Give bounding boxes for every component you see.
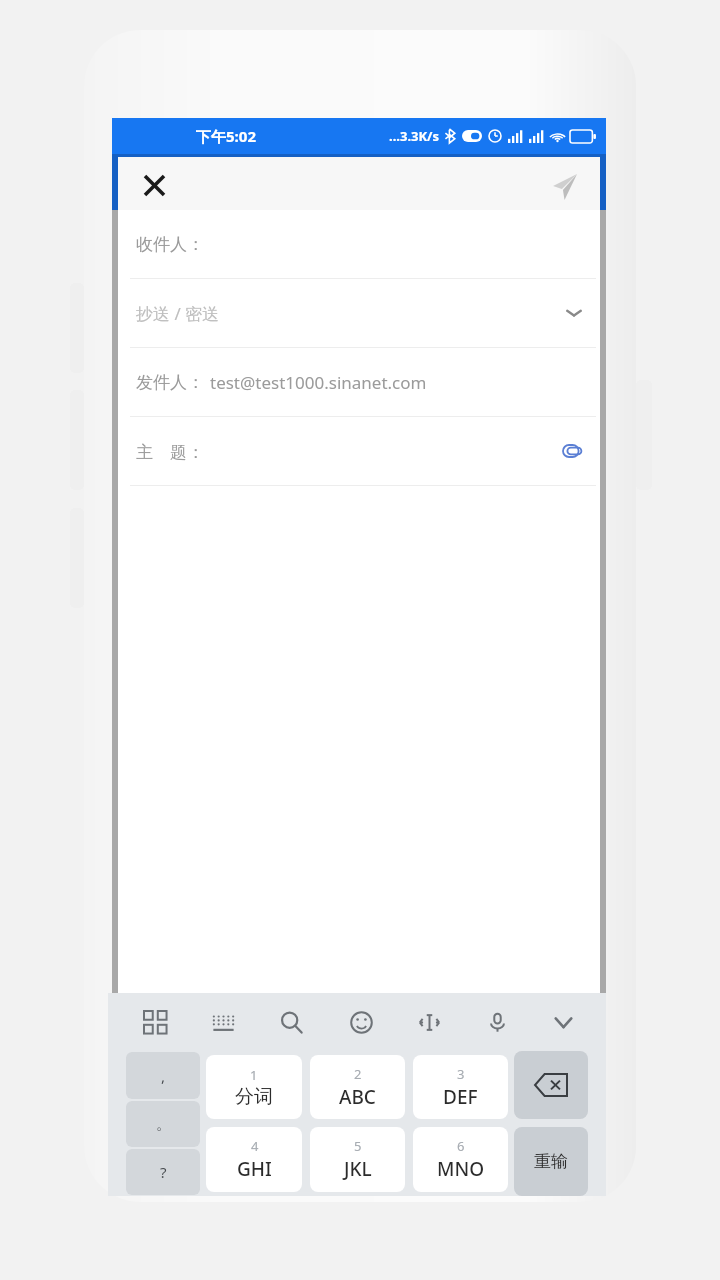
staticText: , bbox=[161, 1066, 166, 1086]
staticText: 6 bbox=[457, 1137, 465, 1155]
button[interactable]: Close bbox=[134, 165, 174, 205]
button[interactable]: Emoji bbox=[342, 1003, 380, 1041]
staticText: JKL bbox=[344, 1156, 372, 1182]
button[interactable]: , bbox=[126, 1052, 200, 1099]
staticText: MNO bbox=[437, 1156, 485, 1182]
button[interactable]: Attach bbox=[556, 434, 590, 468]
button[interactable]: Keyboard bbox=[204, 1003, 242, 1041]
button[interactable]: 2 bbox=[310, 1055, 405, 1119]
button[interactable]: Send bbox=[542, 165, 586, 209]
button[interactable]: 发件人： bbox=[112, 348, 606, 416]
staticText: ...3.3K/s bbox=[389, 127, 440, 145]
button[interactable]: Search bbox=[272, 1003, 310, 1041]
staticText: 。 bbox=[156, 1115, 171, 1134]
button[interactable]: 3 bbox=[413, 1055, 508, 1119]
staticText: GHI bbox=[237, 1156, 272, 1182]
button[interactable]: Apps bbox=[136, 1003, 174, 1041]
staticText: 4 bbox=[251, 1137, 259, 1155]
button[interactable] bbox=[514, 1051, 588, 1119]
button[interactable]: Hide keyboard bbox=[544, 1003, 582, 1041]
button[interactable]: 1 bbox=[206, 1055, 302, 1119]
staticText: 主 题： bbox=[136, 440, 204, 463]
staticText: 3 bbox=[457, 1065, 465, 1083]
button[interactable]: 收件人： bbox=[112, 210, 606, 278]
button[interactable]: 重输 bbox=[514, 1127, 588, 1196]
staticText: ? bbox=[160, 1162, 167, 1182]
staticText: 收件人： bbox=[136, 234, 204, 255]
staticText: 下午5:02 bbox=[196, 126, 256, 146]
staticText: 2 bbox=[354, 1065, 362, 1083]
staticText: 发件人： bbox=[136, 372, 204, 393]
button[interactable]: Voice bbox=[478, 1003, 516, 1041]
staticText: DEF bbox=[443, 1084, 478, 1110]
button[interactable]: 抄送 / 密送 bbox=[112, 279, 606, 347]
staticText: 5 bbox=[354, 1137, 362, 1155]
staticText: 重输 bbox=[534, 1151, 568, 1172]
button[interactable]: Cursor bbox=[410, 1003, 448, 1041]
button[interactable]: 6 bbox=[413, 1127, 508, 1192]
button[interactable]: ? bbox=[126, 1149, 200, 1195]
button[interactable]: 主 题： bbox=[112, 417, 606, 485]
staticText: 1 bbox=[250, 1066, 258, 1084]
staticText: ABC bbox=[339, 1084, 376, 1110]
staticText: 分词 bbox=[235, 1085, 273, 1109]
button[interactable]: 5 bbox=[310, 1127, 405, 1192]
button[interactable]: 4 bbox=[206, 1127, 302, 1192]
button[interactable]: 。 bbox=[126, 1101, 200, 1147]
staticText: test@test1000.sinanet.com bbox=[210, 371, 427, 394]
staticText: 抄送 / 密送 bbox=[136, 302, 220, 325]
